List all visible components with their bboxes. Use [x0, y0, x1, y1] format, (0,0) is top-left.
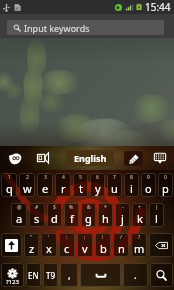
button[interactable]: Symbols — [1, 263, 24, 287]
staticText: 8 — [130, 174, 133, 181]
staticText: / — [120, 234, 122, 241]
button[interactable]: T9 — [43, 263, 58, 287]
staticText: 7 — [113, 174, 116, 181]
staticText: EN — [28, 270, 39, 281]
staticText: e — [42, 181, 49, 196]
staticText: d — [51, 211, 58, 226]
staticText: * — [104, 204, 107, 211]
staticText: 2 — [26, 174, 29, 181]
button[interactable]: EN — [26, 263, 41, 287]
staticText: y — [95, 181, 101, 196]
staticText: ? — [138, 234, 141, 241]
button[interactable]: 5 — [73, 173, 88, 197]
staticText: 3 — [44, 174, 47, 181]
button[interactable]: Input keywords — [7, 20, 164, 35]
staticText: u — [111, 181, 118, 196]
staticText: t — [79, 181, 83, 196]
staticText: - — [122, 204, 124, 211]
button[interactable]: ( — [149, 203, 164, 227]
staticText: % — [69, 204, 74, 211]
staticText: j — [121, 211, 124, 226]
staticText: 9 — [147, 174, 150, 181]
staticText: z — [29, 241, 35, 256]
staticText: x — [46, 241, 52, 256]
button[interactable]: Space — [80, 263, 121, 287]
staticText: p — [162, 181, 169, 196]
staticText: , — [68, 268, 71, 282]
staticText: : — [66, 234, 68, 241]
button[interactable]: 0 — [158, 173, 173, 197]
button[interactable]: 2 — [19, 173, 35, 197]
staticText: " — [30, 234, 33, 241]
button[interactable]: % — [64, 203, 79, 227]
staticText: o — [145, 181, 152, 196]
button[interactable]: 6 — [90, 173, 105, 197]
button[interactable]: : — [59, 233, 75, 257]
button[interactable]: Emoji — [0, 146, 30, 170]
staticText: 6 — [96, 174, 99, 181]
staticText: 5 — [79, 174, 82, 181]
staticText: & — [87, 204, 91, 211]
staticText: English — [74, 152, 107, 164]
button[interactable]: , — [60, 263, 78, 287]
staticText: r — [61, 181, 66, 196]
button[interactable]: 3 — [37, 173, 53, 197]
staticText: ( — [156, 204, 158, 211]
staticText: q — [6, 181, 13, 196]
button[interactable]: 7 — [107, 173, 122, 197]
button[interactable]: # — [29, 203, 45, 227]
staticText: w — [23, 181, 32, 196]
button[interactable]: Search — [150, 263, 173, 287]
staticText: n — [118, 241, 125, 256]
button[interactable]: 8 — [124, 173, 139, 197]
staticText: . — [134, 268, 137, 282]
button[interactable]: + — [132, 203, 147, 227]
staticText: a — [16, 211, 23, 226]
staticText: # — [35, 204, 39, 211]
button[interactable]: ? — [131, 233, 147, 257]
staticText: g — [85, 211, 92, 226]
staticText: ' — [48, 234, 50, 241]
staticText: f — [70, 211, 74, 226]
staticText: s — [34, 211, 40, 226]
button[interactable]: ' — [41, 233, 57, 257]
staticText: @ — [17, 204, 22, 211]
button[interactable]: @ — [11, 203, 27, 227]
button[interactable]: 1 — [1, 173, 17, 197]
staticText: 4 — [62, 174, 65, 181]
button[interactable]: . — [123, 263, 148, 287]
staticText: Input keywords — [24, 22, 90, 34]
staticText: ; — [84, 234, 86, 241]
staticText: ! — [102, 234, 104, 241]
button[interactable]: ; — [77, 233, 93, 257]
button[interactable]: ! — [95, 233, 111, 257]
staticText: + — [138, 204, 141, 211]
button[interactable]: " — [24, 233, 39, 257]
button[interactable]: Theme — [124, 151, 143, 166]
staticText: 0 — [164, 174, 167, 181]
staticText: c — [64, 241, 70, 256]
button[interactable]: * — [98, 203, 113, 227]
button[interactable]: English — [66, 150, 114, 166]
button[interactable]: 4 — [55, 173, 71, 197]
button[interactable]: & — [81, 203, 96, 227]
button[interactable]: - — [115, 203, 130, 227]
staticText: m — [134, 241, 145, 256]
button[interactable]: Backspace — [149, 233, 173, 257]
button[interactable]: Keyboard layout — [150, 146, 170, 170]
staticText: b — [100, 241, 107, 256]
staticText: 1 — [8, 174, 11, 181]
button[interactable]: / — [113, 233, 129, 257]
button[interactable]: $ — [47, 203, 62, 227]
staticText: i — [130, 181, 133, 196]
button[interactable]: Shift — [1, 233, 22, 257]
staticText: l — [155, 211, 158, 226]
staticText: k — [137, 211, 143, 226]
staticText: ?123 — [6, 278, 19, 286]
staticText: 15:44 — [145, 0, 171, 14]
staticText: T9 — [46, 270, 56, 281]
staticText: v — [82, 241, 88, 256]
button[interactable]: 9 — [141, 173, 156, 197]
button[interactable]: Voice input — [30, 146, 56, 170]
staticText: h — [102, 211, 109, 226]
